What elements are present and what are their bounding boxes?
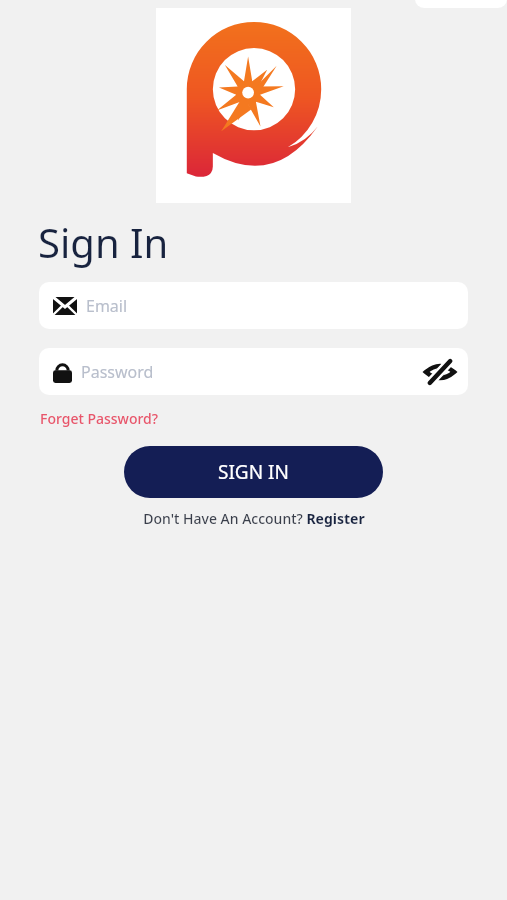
button[interactable]: Forget Password?	[38, 407, 161, 430]
button[interactable]: Email	[39, 282, 468, 329]
button[interactable]: Password	[39, 348, 468, 395]
staticText: Email	[86, 295, 460, 317]
button[interactable]: SIGN IN	[124, 446, 383, 498]
staticText: Don't Have An Account? Register	[143, 509, 365, 528]
button[interactable]: Don't Have An Account? Register	[139, 506, 369, 531]
staticText: Sign In	[38, 215, 169, 269]
staticText: SIGN IN	[218, 459, 289, 485]
staticText: Forget Password?	[40, 409, 159, 428]
staticText: Password	[81, 361, 420, 383]
button[interactable]: Show password	[420, 352, 460, 392]
